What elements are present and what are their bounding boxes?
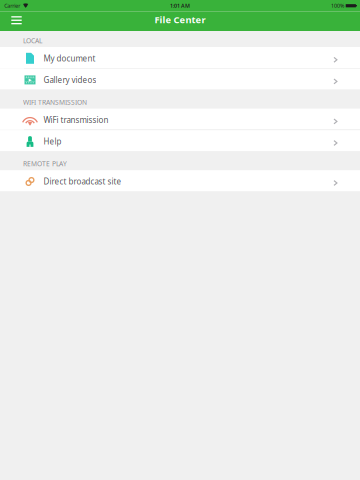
staticText: My document: [43, 53, 95, 64]
staticText: 100%: [331, 2, 344, 9]
button[interactable]: WiFi transmission: [0, 109, 360, 130]
staticText: Carrier: [4, 2, 20, 9]
staticText: Help: [43, 136, 61, 147]
staticText: File Center: [154, 13, 205, 26]
staticText: 1:01 AM: [170, 2, 190, 9]
button[interactable]: Gallery videos: [0, 69, 360, 90]
button[interactable]: Menu: [5, 13, 27, 29]
button[interactable]: Help: [0, 130, 360, 151]
staticText: LOCAL: [23, 36, 42, 45]
staticText: Gallery videos: [43, 75, 96, 85]
staticText: WIFI TRANSMISSION: [23, 98, 87, 107]
staticText: WiFi transmission: [43, 115, 108, 125]
button[interactable]: Direct broadcast site: [0, 170, 360, 191]
button[interactable]: My document: [0, 47, 360, 68]
staticText: REMOTE PLAY: [23, 159, 67, 168]
staticText: Direct broadcast site: [43, 176, 121, 187]
